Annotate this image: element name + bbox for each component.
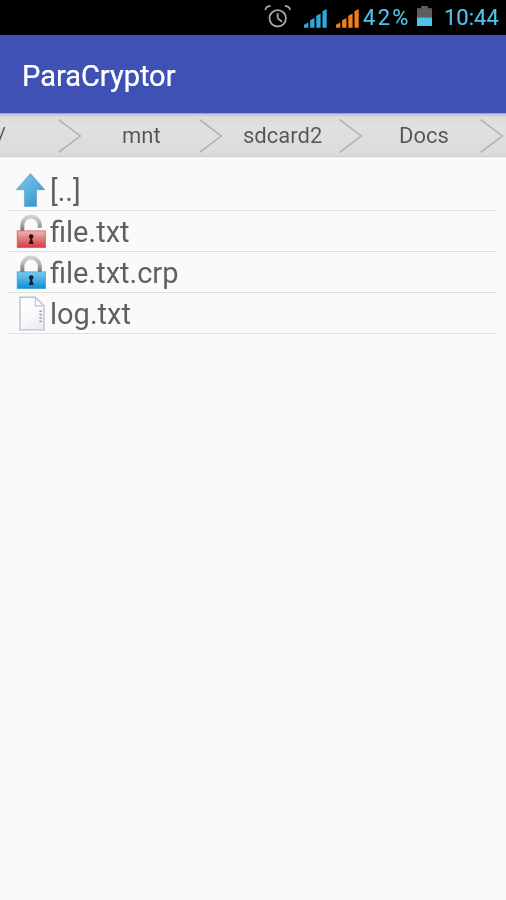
button[interactable]: file.txt.crp	[0, 252, 506, 293]
staticText: /	[0, 123, 7, 149]
staticText: mnt	[122, 123, 161, 149]
staticText: [..]	[50, 174, 81, 208]
staticText: 10:44	[444, 5, 499, 31]
button[interactable]: sdcard2	[212, 113, 353, 159]
other: Battery 42 percent	[417, 6, 433, 28]
staticText: log.txt	[50, 297, 131, 331]
staticText: sdcard2	[243, 123, 323, 149]
button[interactable]: Docs	[353, 113, 494, 159]
staticText: file.txt	[50, 215, 130, 249]
staticText: 42%	[363, 5, 411, 31]
button[interactable]: [..]	[0, 170, 506, 211]
staticText: file.txt.crp	[50, 256, 179, 290]
staticText: Docs	[399, 123, 449, 149]
other: Mobile signal SIM 1	[304, 7, 326, 28]
button[interactable]: file.txt	[0, 211, 506, 252]
button[interactable]: log.txt	[0, 293, 506, 334]
button[interactable]: mnt	[71, 113, 212, 159]
other: Alarm set	[264, 5, 292, 30]
other: Mobile signal SIM 2	[336, 7, 358, 28]
staticText: ParaCryptor	[22, 59, 176, 93]
button[interactable]: /	[0, 113, 72, 159]
